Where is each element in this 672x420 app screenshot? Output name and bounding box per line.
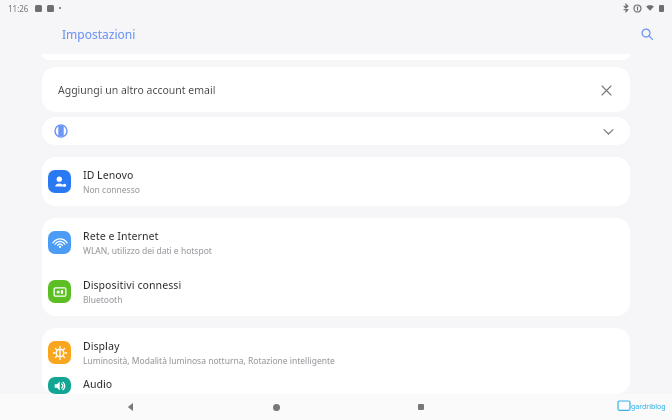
- button[interactable]: Espandi: [598, 121, 618, 141]
- button[interactable]: Audio: [42, 377, 630, 394]
- staticText: Bluetooth: [83, 294, 123, 306]
- button[interactable]: Chiudi: [594, 78, 618, 102]
- staticText: Dispositivi connessi: [83, 278, 182, 292]
- button[interactable]: Cerca: [634, 21, 660, 47]
- button[interactable]: Aggiungi un altro account email: [42, 67, 630, 112]
- button[interactable]: Rete e Internet: [42, 218, 630, 267]
- staticText: Impostazioni: [62, 26, 136, 42]
- button[interactable]: ID Lenovo: [42, 157, 630, 206]
- staticText: WLAN, utilizzo dei dati e hotspot: [83, 245, 212, 257]
- staticText: gardriblog: [631, 402, 666, 412]
- button[interactable]: Indietro: [118, 394, 144, 420]
- staticText: Audio: [83, 377, 113, 391]
- button[interactable]: Recenti: [408, 394, 434, 420]
- button[interactable]: Dispositivi connessi: [42, 267, 630, 316]
- staticText: Rete e Internet: [83, 229, 159, 243]
- button[interactable]: Home: [263, 394, 289, 420]
- staticText: Aggiungi un altro account email: [58, 83, 216, 97]
- staticText: Luminosità, Modalità luminosa notturna, …: [83, 355, 335, 367]
- staticText: Non connesso: [83, 184, 140, 196]
- other: Contrasto: [54, 124, 68, 138]
- button[interactable]: Display: [42, 328, 630, 377]
- button[interactable]: Contrasto: [42, 117, 630, 145]
- staticText: ID Lenovo: [83, 168, 134, 182]
- staticText: 11:26: [8, 3, 29, 14]
- staticText: Display: [83, 339, 120, 353]
